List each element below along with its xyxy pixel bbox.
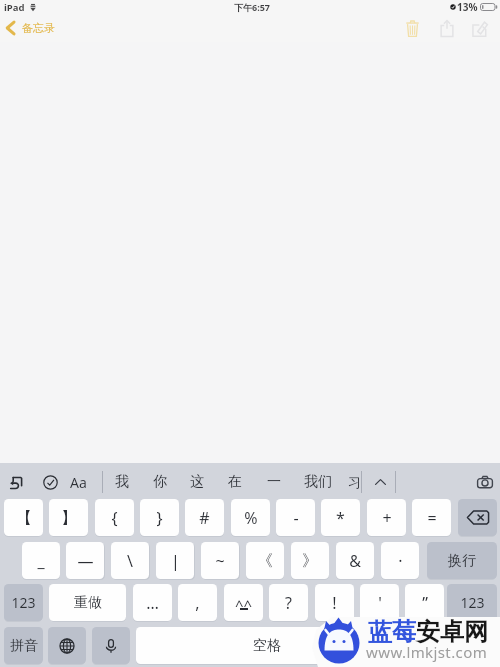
button[interactable]: ? [269,584,308,621]
staticText: … [146,592,159,614]
staticText: 我 [115,473,129,491]
staticText: # [199,507,210,529]
button[interactable]: Done [38,470,62,494]
button[interactable]: 重做 [49,584,126,621]
staticText: - [293,507,299,529]
staticText: * [336,507,345,529]
button[interactable]: — [66,542,104,579]
staticText: 】 [61,508,77,528]
staticText: 你 [153,473,167,491]
staticText: 空格 [253,637,281,655]
staticText: = [427,507,437,529]
staticText: ~ [215,550,225,572]
button[interactable]: ” [405,584,444,621]
staticText: · [398,550,403,572]
button[interactable]: 空格 [136,627,398,664]
button[interactable]: Undo [4,470,28,494]
button[interactable]: Expand candidates [368,470,392,494]
staticText: 备忘录 [22,21,55,35]
button[interactable]: 【 [4,499,43,536]
staticText: 习 [348,474,361,490]
button[interactable]: Backspace [458,499,497,536]
staticText: Aa [70,473,87,492]
staticText: } [156,507,163,529]
button[interactable]: * [321,499,360,536]
staticText: 123 [460,593,485,612]
staticText: _ [37,550,45,572]
staticText: ? [285,592,292,614]
button[interactable]: Dictation [92,627,130,664]
button[interactable]: 】 [49,499,88,536]
button[interactable]: % [231,499,270,536]
button[interactable]: 在 [218,467,252,497]
button[interactable]: 我 [105,467,139,497]
staticText: , [195,592,200,614]
button[interactable]: + [367,499,406,536]
button[interactable]: Aa [66,470,90,494]
button[interactable]: , [178,584,217,621]
button[interactable]: · [381,542,419,579]
button[interactable]: Key [404,627,496,664]
staticText: & [349,550,361,572]
staticText: 拼音 [10,637,38,655]
button[interactable]: | [156,542,194,579]
staticText: 下午6:57 [234,1,270,13]
staticText: www.lmkjst.com [366,642,488,662]
staticText: 我们 [304,473,332,491]
button[interactable]: # [185,499,224,536]
button[interactable]: 你 [143,467,177,497]
button[interactable]: 换行 [427,542,497,579]
staticText: \ [127,550,133,572]
staticText: 123 [11,593,36,612]
button[interactable]: … [133,584,172,621]
button[interactable]: ! [315,584,354,621]
staticText: 13% [457,0,478,14]
button[interactable]: 《 [246,542,284,579]
button[interactable]: ' [360,584,399,621]
staticText: ” [422,592,428,614]
button[interactable]: = [412,499,451,536]
staticText: ^^ [235,595,253,611]
staticText: 在 [228,473,242,491]
staticText: { [111,507,118,529]
staticText: 》 [302,551,318,571]
staticText: iPad [4,1,25,14]
button[interactable]: 123 [447,584,497,621]
button[interactable]: { [95,499,134,536]
staticText: + [382,507,392,529]
button[interactable]: 我们 [301,467,335,497]
button[interactable]: 这 [180,467,214,497]
button[interactable]: - [276,499,315,536]
button[interactable]: Switch keyboard [48,627,86,664]
button[interactable]: 备忘录 [5,20,55,36]
staticText: 安卓网 [416,617,488,647]
staticText: 【 [16,508,32,528]
button[interactable]: ^^ [224,584,263,621]
staticText: 这 [190,473,204,491]
button[interactable]: Compose [470,18,490,38]
button[interactable]: & [336,542,374,579]
button[interactable]: ~ [201,542,239,579]
button[interactable]: Share [437,18,457,38]
staticText: 重做 [74,594,102,612]
staticText: ! [332,592,337,614]
button[interactable]: } [140,499,179,536]
staticText: 蓝莓 [368,617,416,647]
staticText: — [77,550,94,572]
button[interactable]: 拼音 [4,627,43,664]
button[interactable]: Delete [402,18,422,38]
button[interactable]: 一 [257,467,291,497]
button[interactable]: 》 [291,542,329,579]
staticText: 《 [257,551,273,571]
staticText: ' [378,592,382,614]
staticText: % [244,507,258,529]
button[interactable]: _ [22,542,60,579]
staticText: | [171,550,180,572]
staticText: 换行 [448,552,476,570]
button[interactable]: Camera [474,471,496,493]
staticText: 一 [267,473,281,491]
button[interactable]: \ [111,542,149,579]
button[interactable]: 123 [4,584,43,621]
